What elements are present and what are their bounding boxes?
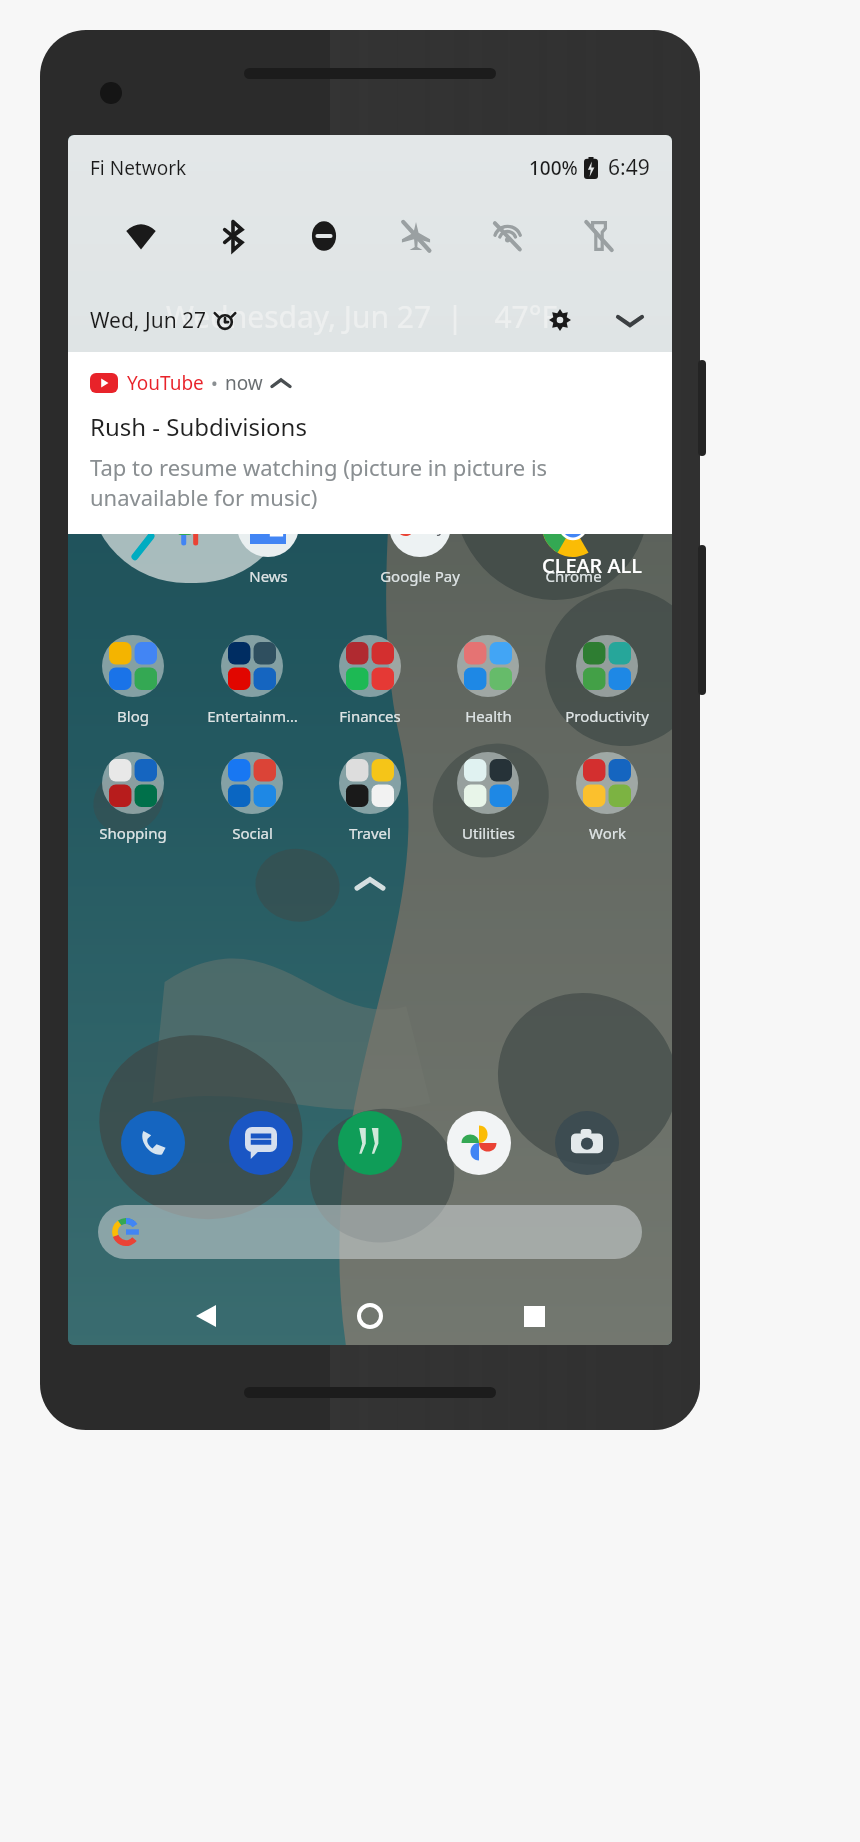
button[interactable]: Settings: [540, 300, 580, 340]
staticText: Health: [465, 706, 512, 726]
staticText: Chrome: [545, 566, 602, 586]
staticText: Work: [589, 823, 626, 843]
button[interactable]: [98, 1205, 642, 1259]
button[interactable]: Auto rotate: [475, 204, 539, 268]
button[interactable]: Flashlight: [567, 204, 631, 268]
button[interactable]: YouTube: [68, 352, 672, 534]
staticText: Fi Network: [90, 155, 187, 181]
staticText: YouTube: [127, 370, 204, 396]
staticText: •: [211, 371, 218, 396]
button[interactable]: Shopping: [80, 748, 186, 847]
staticText: News: [249, 566, 288, 586]
button[interactable]: Blog: [80, 631, 186, 730]
button[interactable]: Wi-Fi: [109, 204, 173, 268]
staticText: Finances: [339, 706, 401, 726]
button[interactable]: Pay: [367, 491, 473, 590]
button[interactable]: Wed, Jun 27: [90, 306, 234, 335]
button[interactable]: Social: [199, 748, 305, 847]
staticText: Entertainm…: [207, 706, 298, 726]
button[interactable]: Expand: [610, 300, 650, 340]
staticText: Shopping: [99, 823, 167, 843]
staticText: Social: [232, 823, 273, 843]
staticText: Wednesday, Jun 27 | 47°F: [166, 296, 558, 337]
staticText: Blog: [117, 706, 149, 726]
button[interactable]: Bluetooth: [201, 204, 265, 268]
staticText: 100%: [529, 155, 578, 181]
button[interactable]: Messages: [223, 1105, 299, 1181]
staticText: 0.53: [137, 426, 213, 478]
staticText: Pay: [418, 515, 445, 537]
staticText: Wed, Jun 27: [90, 306, 207, 335]
staticText: Utilities: [462, 823, 515, 843]
button[interactable]: Phone: [115, 1105, 191, 1181]
staticText: Rush - Subdivisions: [90, 410, 307, 443]
staticText: Tap to resume watching (picture in pictu…: [90, 452, 650, 512]
staticText: 6:49: [608, 153, 650, 182]
button[interactable]: Recents: [508, 1290, 560, 1342]
staticText: Google Pay: [380, 566, 460, 586]
staticText: 18 days left: [140, 481, 242, 507]
staticText: Travel: [349, 823, 391, 843]
button[interactable]: Back: [180, 1290, 232, 1342]
button[interactable]: CLEAR ALL: [526, 542, 658, 589]
button[interactable]: Do not disturb: [292, 204, 356, 268]
staticText: Productivity: [565, 706, 649, 726]
button[interactable]: Photos: [441, 1105, 517, 1181]
button[interactable]: Health: [435, 631, 541, 730]
button[interactable]: Travel: [317, 748, 423, 847]
button[interactable]: Productivity: [554, 631, 660, 730]
button[interactable]: News: [215, 491, 321, 590]
button[interactable]: Work: [554, 748, 660, 847]
staticText: now: [225, 370, 263, 396]
staticText: GB: [218, 446, 245, 472]
button[interactable]: Finances: [317, 631, 423, 730]
button[interactable]: Chrome: [520, 491, 626, 590]
button[interactable]: Hangouts: [332, 1105, 408, 1181]
button[interactable]: Entertainm…: [199, 631, 305, 730]
staticText: CLEAR ALL: [542, 552, 642, 579]
button[interactable]: 0.53: [88, 387, 294, 583]
button[interactable]: Airplane mode: [384, 204, 448, 268]
button[interactable]: Camera: [549, 1105, 625, 1181]
button[interactable]: Utilities: [435, 748, 541, 847]
button[interactable]: Home: [344, 1290, 396, 1342]
